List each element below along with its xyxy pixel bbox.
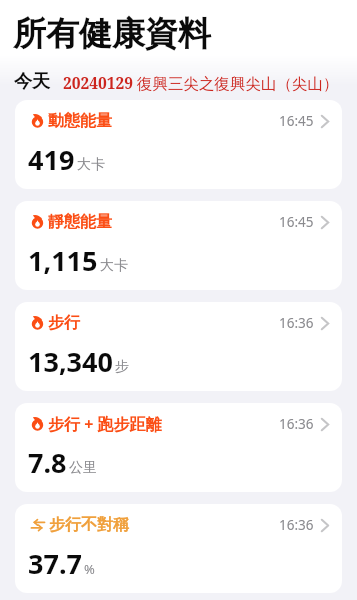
staticText: 大卡: [77, 156, 105, 174]
staticText: 16:36: [279, 415, 314, 433]
staticText: 16:36: [279, 516, 314, 534]
staticText: 大卡: [100, 257, 128, 275]
staticText: 20240129 復興三尖之復興尖山（尖山）: [63, 72, 339, 93]
staticText: 步: [115, 358, 129, 376]
staticText: 16:45: [279, 112, 314, 130]
staticText: 7.8: [28, 444, 67, 481]
staticText: 16:45: [279, 213, 314, 231]
staticText: 所有健康資料: [13, 13, 211, 55]
staticText: 419: [28, 141, 75, 178]
staticText: 動態能量: [48, 111, 112, 131]
button[interactable]: 今天: [14, 70, 339, 93]
staticText: 13,340: [28, 343, 113, 380]
button[interactable]: 步行: [15, 302, 342, 391]
staticText: 步行不對稱: [49, 515, 129, 535]
staticText: 靜態能量: [48, 212, 112, 232]
staticText: 37.7: [28, 545, 82, 582]
staticText: 步行 + 跑步距離: [48, 413, 162, 435]
staticText: 16:36: [279, 314, 314, 332]
staticText: %: [84, 560, 95, 578]
button[interactable]: 步行 + 跑步距離: [15, 403, 342, 492]
button[interactable]: 動態能量: [15, 100, 342, 189]
button[interactable]: 靜態能量: [15, 201, 342, 290]
staticText: 1,115: [28, 242, 98, 279]
staticText: 步行: [48, 313, 80, 333]
staticText: 今天: [14, 70, 50, 93]
staticText: 公里: [69, 459, 97, 477]
button[interactable]: 步行不對稱: [15, 504, 342, 593]
